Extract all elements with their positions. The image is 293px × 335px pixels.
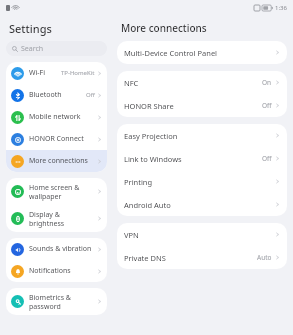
other: DISPLAY <box>14 215 22 223</box>
other: MOBILE <box>14 114 22 122</box>
staticText: Printing <box>124 177 275 187</box>
staticText: Off <box>86 91 95 99</box>
other: MORE <box>14 158 22 166</box>
staticText: Search <box>21 44 44 54</box>
staticText: More connections <box>121 21 207 35</box>
button[interactable]: Private DNS <box>117 246 287 269</box>
button[interactable]: Search <box>6 41 107 56</box>
staticText: Off <box>262 154 272 163</box>
staticText: Link to Windows <box>124 154 262 164</box>
button[interactable]: MORE <box>6 150 107 172</box>
staticText: Mobile network <box>29 112 97 122</box>
staticText: HONOR Share <box>124 101 262 111</box>
staticText: HONOR Connect <box>29 134 97 144</box>
button[interactable]: WIFI <box>6 62 107 84</box>
button[interactable]: HOME <box>6 178 107 205</box>
other: WIFI <box>14 70 22 78</box>
staticText: Private DNS <box>124 253 257 263</box>
staticText: Home screen & wallpaper <box>29 183 97 201</box>
button[interactable]: Android Auto <box>117 193 287 216</box>
staticText: Bluetooth <box>29 90 86 100</box>
staticText: On <box>262 78 272 87</box>
button[interactable]: DISPLAY <box>6 205 107 232</box>
button[interactable]: BIO <box>6 288 107 315</box>
staticText: Multi-Device Control Panel <box>124 48 275 58</box>
button[interactable]: MOBILE <box>6 106 107 128</box>
button[interactable]: Link to Windows <box>117 147 287 170</box>
staticText: TP-HomeKit <box>61 69 95 77</box>
button[interactable]: Printing <box>117 170 287 193</box>
button[interactable]: CONNECT <box>6 128 107 150</box>
other: BLUETOOTH <box>14 92 22 100</box>
button[interactable]: NFC <box>117 71 287 94</box>
button[interactable]: Multi-Device Control Panel <box>117 41 287 64</box>
button[interactable]: VPN <box>117 223 287 246</box>
staticText: NFC <box>124 78 262 88</box>
staticText: Auto <box>257 253 272 262</box>
other: SOUND <box>14 246 22 254</box>
button[interactable]: HONOR Share <box>117 94 287 117</box>
staticText: Off <box>262 101 272 110</box>
staticText: Android Auto <box>124 200 275 210</box>
staticText: Easy Projection <box>124 131 275 141</box>
button[interactable]: NOTIF <box>6 260 107 282</box>
staticText: More connections <box>29 156 97 166</box>
button[interactable]: Easy Projection <box>117 124 287 147</box>
other: HOME <box>14 188 22 196</box>
other: CONNECT <box>14 136 22 144</box>
staticText: 1:36 <box>275 4 287 12</box>
staticText: Biometrics & password <box>29 293 97 311</box>
staticText: Settings <box>9 21 52 36</box>
staticText: Notifications <box>29 266 97 276</box>
other: BIO <box>14 298 22 306</box>
staticText: VPN <box>124 230 275 240</box>
button[interactable]: SOUND <box>6 238 107 260</box>
staticText: Wi-Fi <box>29 68 61 78</box>
staticText: Display & brightness <box>29 210 97 228</box>
staticText: Sounds & vibration <box>29 244 97 254</box>
button[interactable]: BLUETOOTH <box>6 84 107 106</box>
other: NOTIF <box>14 268 22 276</box>
